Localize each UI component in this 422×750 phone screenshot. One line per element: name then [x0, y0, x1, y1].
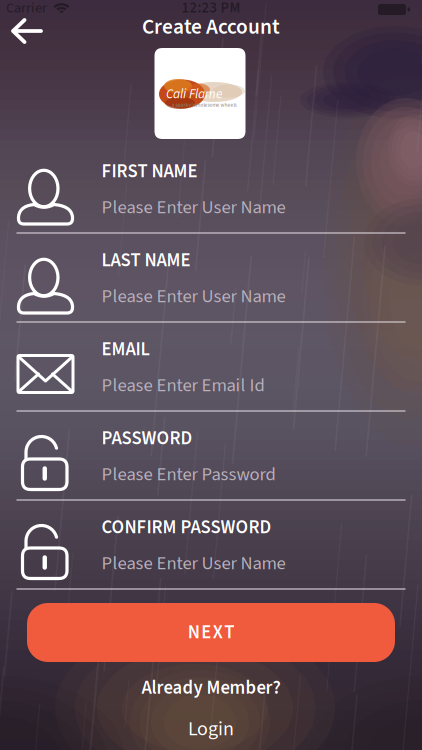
staticText: Already Member? [141, 675, 280, 701]
staticText: CONFIRM PASSWORD [101, 514, 271, 540]
staticText: Carrier [6, 0, 47, 18]
staticText: LAST NAME [101, 247, 190, 273]
staticText: Please Enter User Name [101, 550, 285, 576]
button[interactable]: NEXT [27, 603, 395, 662]
staticText: EMAIL [101, 336, 149, 362]
staticText: Cali Flame [166, 85, 222, 103]
staticText: PASSWORD [101, 425, 192, 451]
button[interactable]: EMAIL [0, 322, 422, 411]
staticText: Create Account [142, 12, 280, 42]
button[interactable]: Back [0, 0, 54, 44]
staticText: 12:23 PM [181, 0, 240, 18]
button[interactable]: PASSWORD [0, 411, 422, 500]
staticText: FIRST NAME [101, 158, 197, 184]
staticText: Please Enter User Name [101, 283, 285, 309]
staticText: Please Enter Password [101, 461, 275, 487]
button[interactable]: Login [166, 714, 256, 744]
staticText: Please Enter Email Id [101, 372, 264, 398]
staticText: Please Enter User Name [101, 194, 285, 220]
button[interactable]: LAST NAME [0, 233, 422, 322]
staticText: a sparky | wholesome wheels [171, 101, 236, 109]
button[interactable]: CONFIRM PASSWORD [0, 500, 422, 589]
staticText: Login [188, 715, 234, 743]
staticText: NEXT [188, 619, 234, 645]
button[interactable]: FIRST NAME [0, 144, 422, 233]
